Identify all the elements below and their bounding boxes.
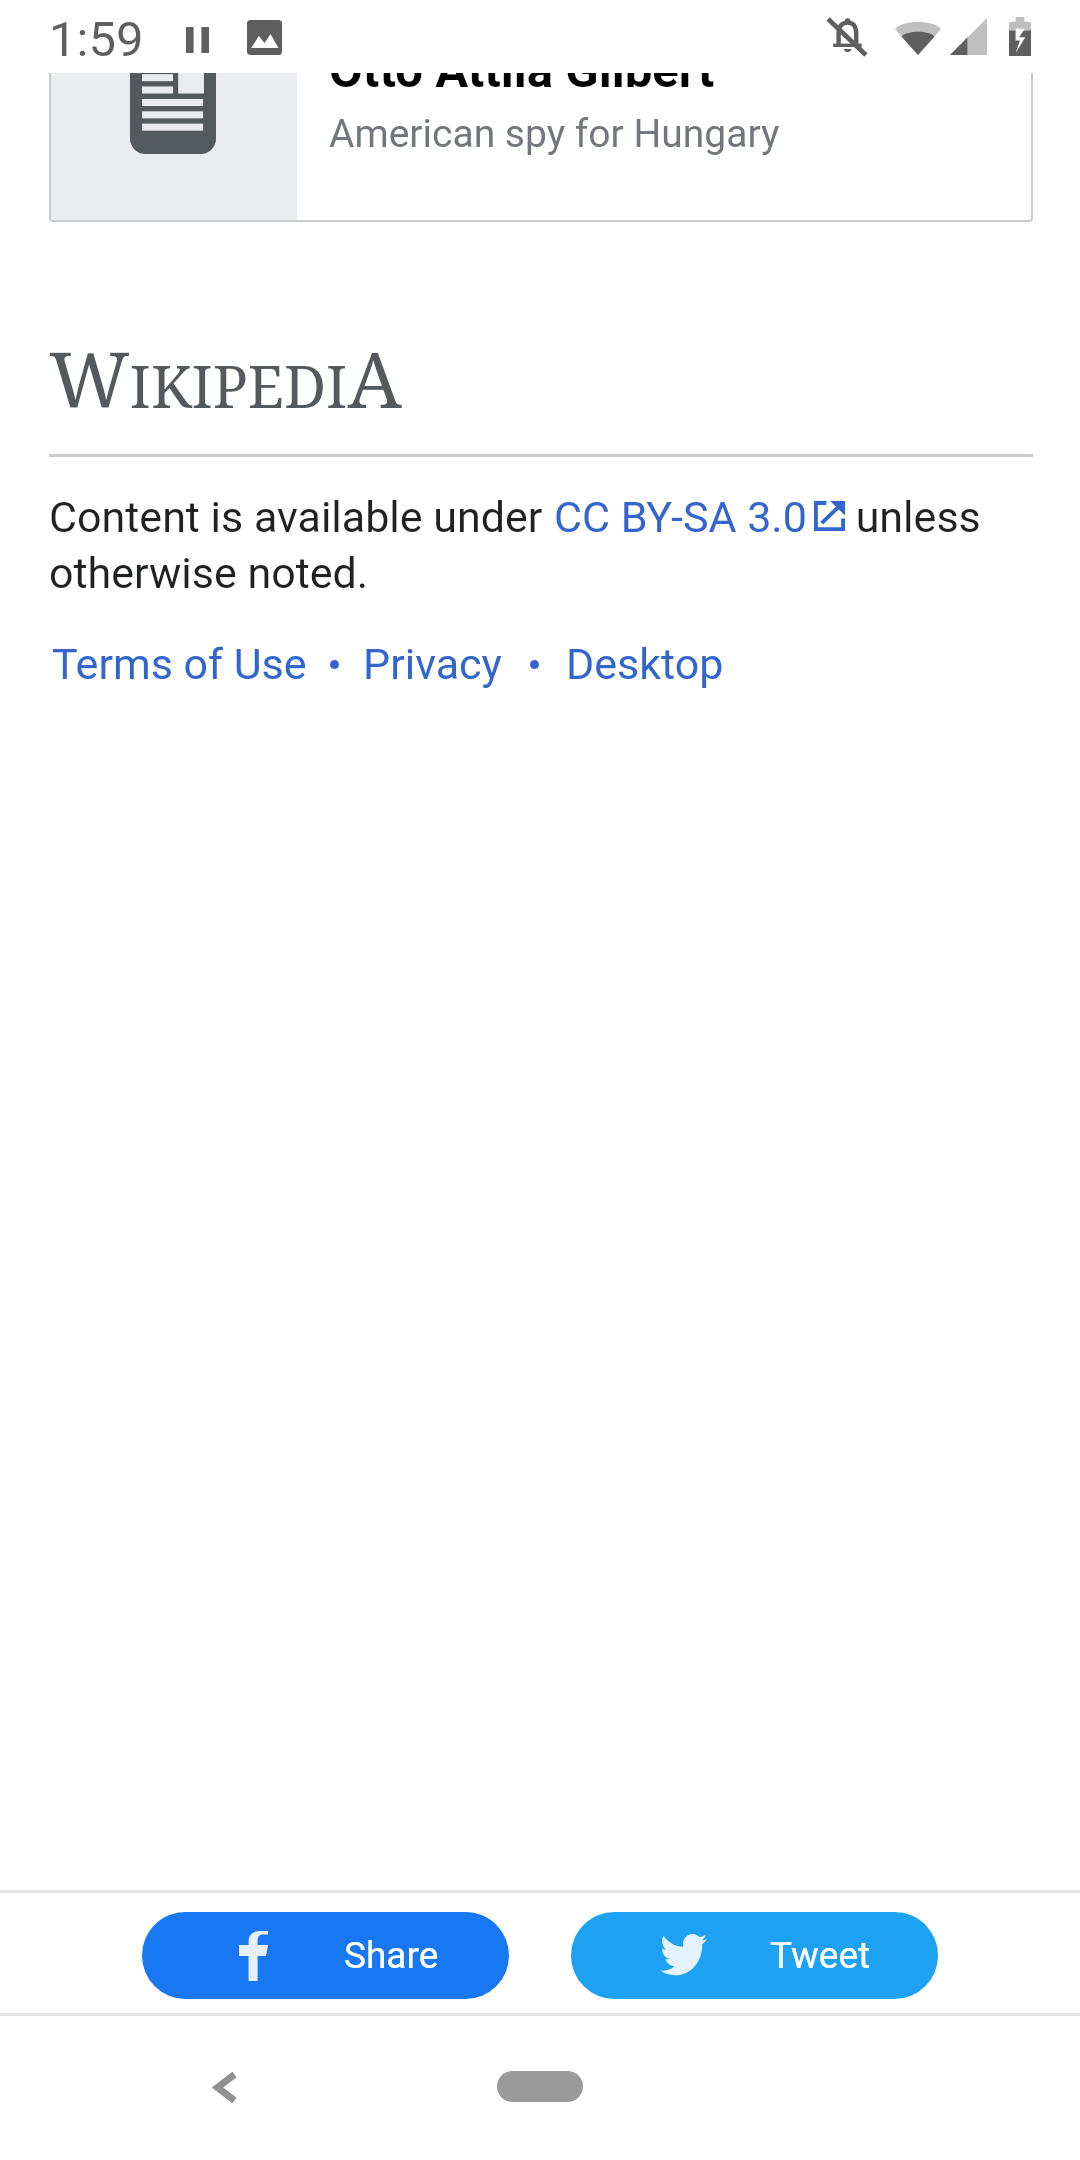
button[interactable]: Share	[142, 1912, 509, 1999]
button[interactable]: Home	[497, 2071, 583, 2102]
staticText: Privacy	[363, 639, 502, 689]
staticText: Tweet	[770, 1934, 871, 1977]
staticText: Share	[344, 1934, 439, 1977]
staticText: CC BY-SA 3.0	[554, 492, 807, 542]
button[interactable]: Terms of Use	[52, 639, 307, 689]
staticText: Content is available under	[49, 492, 554, 542]
staticText: otherwise noted.	[49, 548, 369, 598]
staticText: WIKIPEDIA	[49, 326, 402, 431]
button[interactable]: Back	[169, 2071, 283, 2155]
button[interactable]: Privacy	[363, 639, 502, 689]
button[interactable]: Desktop	[566, 639, 724, 689]
staticText: unless	[845, 492, 981, 542]
staticText: 1:59	[49, 11, 144, 68]
staticText: American spy for Hungary	[329, 111, 780, 157]
staticText: Otto Attila Gilbert	[329, 42, 715, 99]
staticText: Terms of Use	[52, 639, 307, 689]
staticText: Desktop	[566, 639, 724, 689]
button[interactable]: CC BY-SA 3.0	[554, 492, 845, 542]
button[interactable]: Tweet	[571, 1912, 938, 1999]
button[interactable]: Otto Attila Gilbert	[49, 0, 1033, 222]
